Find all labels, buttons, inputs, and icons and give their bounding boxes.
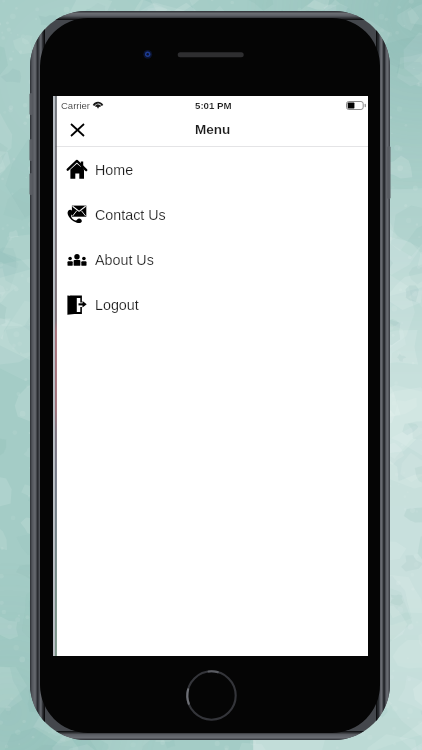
staticText: Carrier [61, 100, 91, 111]
button[interactable]: Contact Us [53, 192, 368, 237]
staticText: Logout [95, 297, 139, 313]
staticText: About Us [95, 252, 154, 268]
button[interactable]: Logout [53, 282, 368, 327]
staticText: Contact Us [95, 207, 166, 223]
staticText: Home [95, 162, 134, 178]
button[interactable]: Close menu [64, 117, 90, 143]
staticText: Menu [195, 122, 231, 137]
button[interactable]: About Us [53, 237, 368, 282]
staticText: 5:01 PM [195, 100, 232, 111]
button[interactable]: Home [53, 147, 368, 192]
